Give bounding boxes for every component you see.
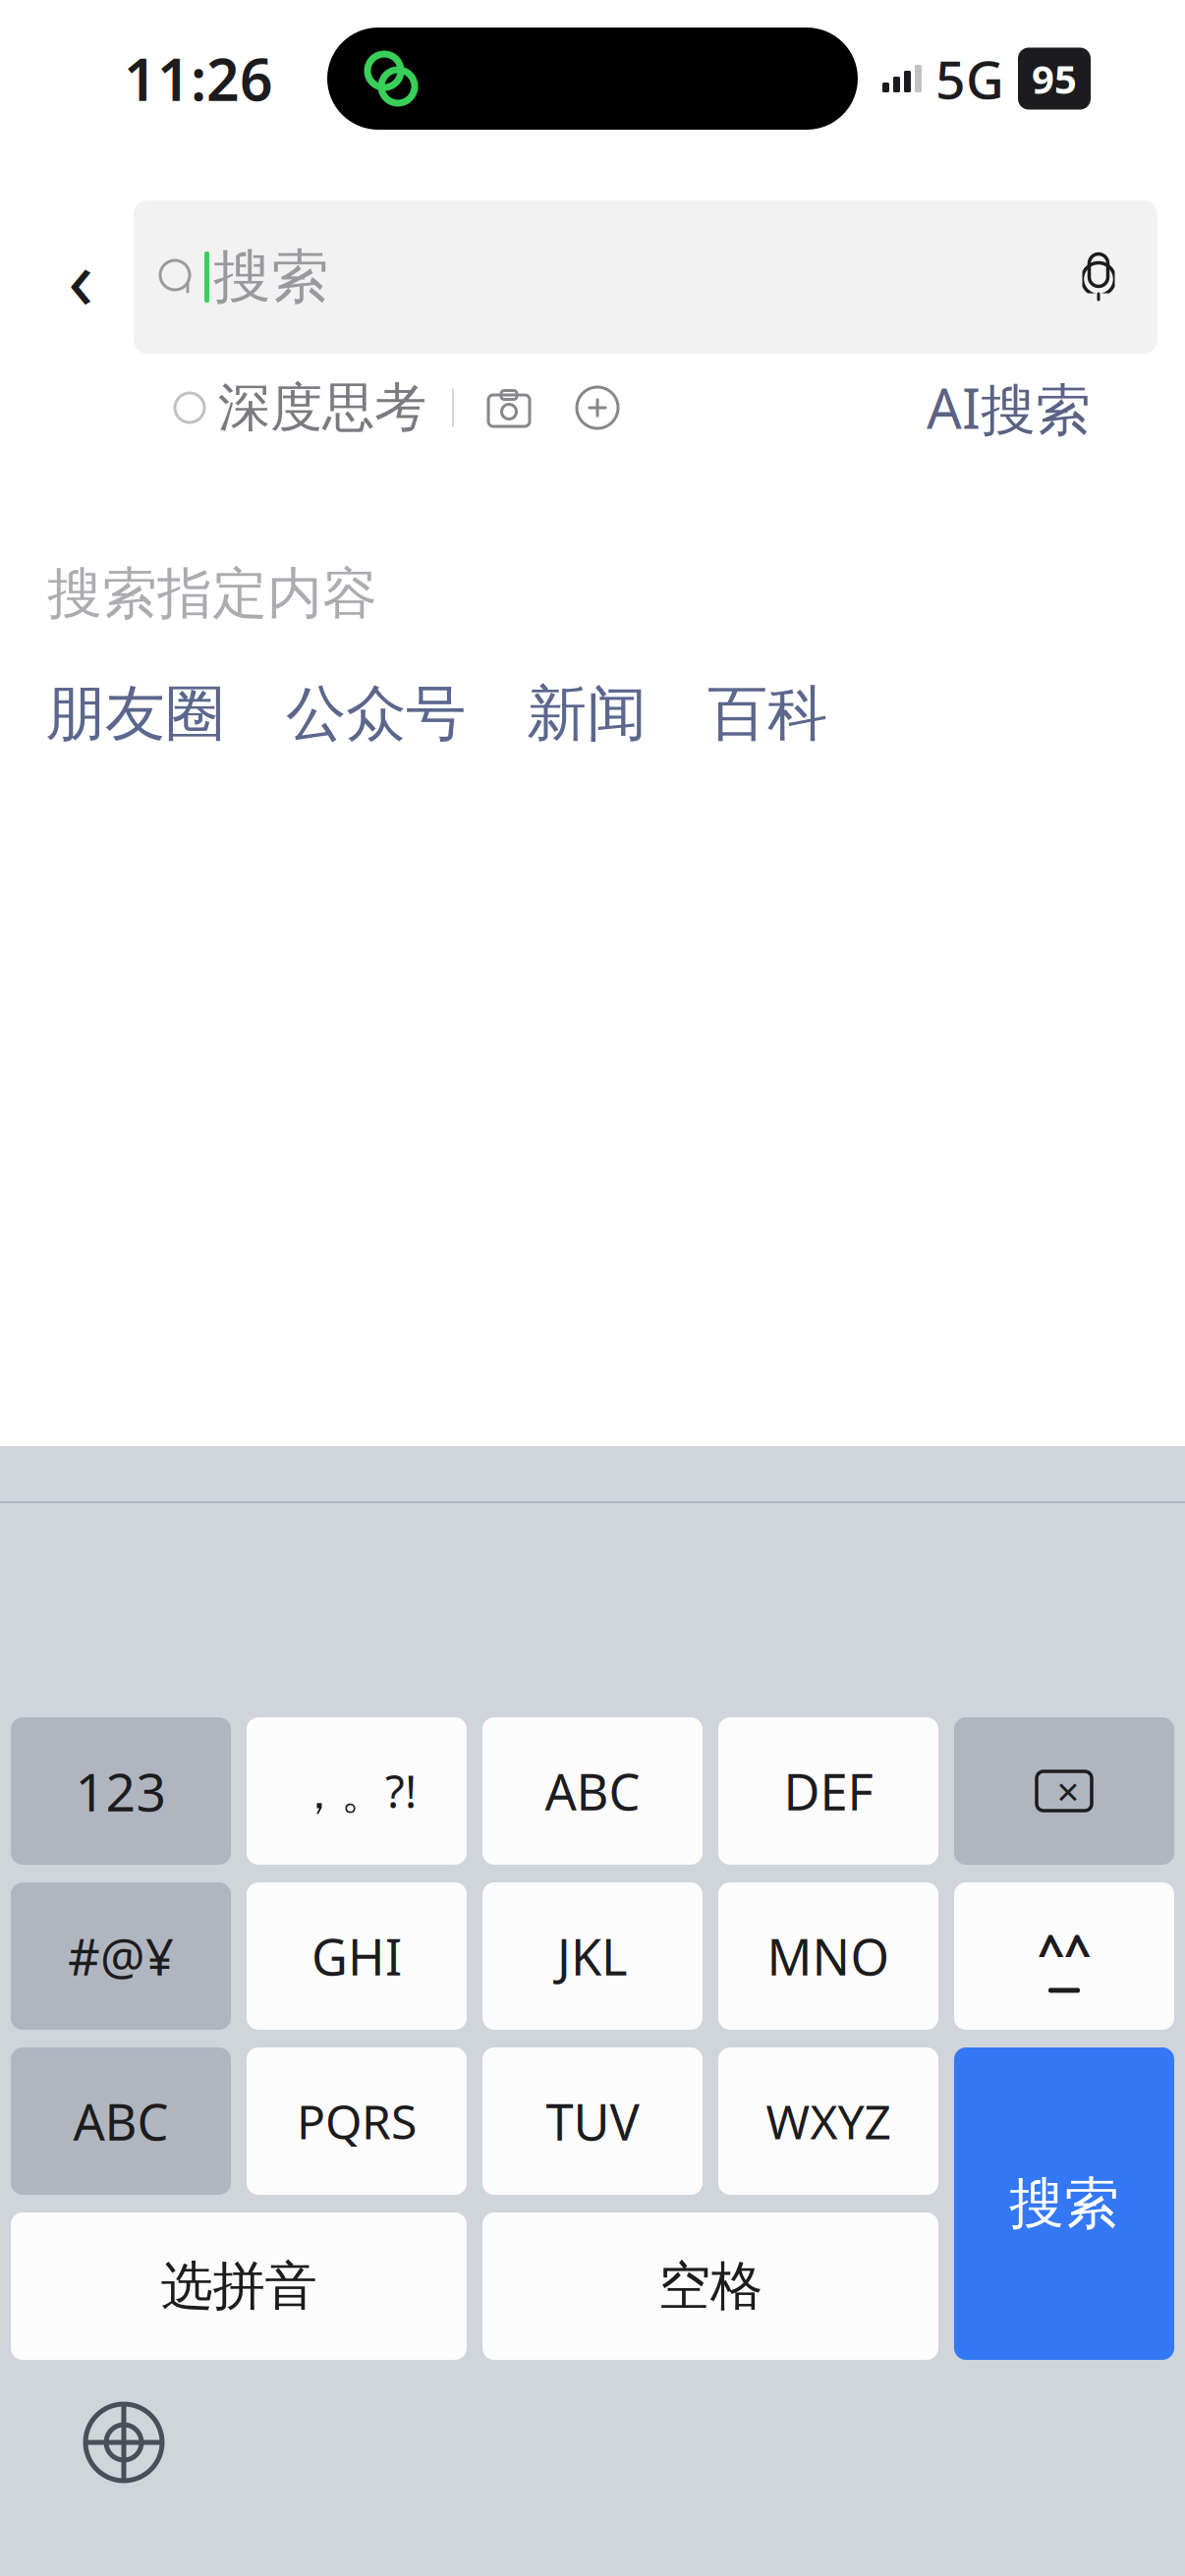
button[interactable]: 选拼音 (11, 2212, 467, 2360)
button[interactable]: 搜索 (954, 2047, 1174, 2360)
staticText: 搜索 (1009, 2170, 1119, 2237)
button[interactable]: MNO (718, 1882, 938, 2030)
staticText: ABC (545, 1758, 640, 1824)
button[interactable]: 拍照搜索 (472, 370, 546, 445)
button[interactable]: ，。?! (247, 1717, 467, 1865)
staticText: 95 (1032, 52, 1077, 105)
button[interactable]: ABC (11, 2047, 231, 2195)
staticText: 空格 (658, 2254, 762, 2318)
button[interactable]: × (954, 1717, 1174, 1865)
staticText: 百科 (707, 677, 827, 751)
staticText: MNO (767, 1923, 890, 1989)
staticText: × (1057, 1765, 1079, 1817)
staticText: WXYZ (766, 2090, 891, 2152)
staticText: ^^ (1038, 1919, 1091, 1982)
staticText: ‹ (68, 221, 93, 333)
button[interactable]: 语音输入 (1059, 238, 1138, 316)
staticText: JKL (557, 1923, 628, 1989)
button[interactable]: ^^ (954, 1882, 1174, 2030)
staticText: 新闻 (527, 677, 647, 751)
staticText: 朋友圈 (45, 677, 225, 751)
button[interactable]: 搜索 (134, 200, 1157, 354)
staticText: PQRS (297, 2090, 417, 2152)
button[interactable]: 返回 (28, 224, 134, 330)
button[interactable]: 深度思考 (175, 366, 426, 450)
staticText: TUV (546, 2088, 639, 2154)
staticText: ABC (73, 2088, 169, 2154)
button[interactable]: ABC (482, 1717, 703, 1865)
staticText: AI搜索 (927, 371, 1091, 444)
staticText: GHI (311, 1923, 402, 1989)
staticText: 公众号 (286, 677, 466, 751)
staticText: 123 (75, 1756, 167, 1826)
button[interactable]: 朋友圈 (45, 671, 225, 757)
button[interactable]: 新闻 (527, 671, 647, 757)
button[interactable]: 123 (11, 1717, 231, 1865)
button[interactable]: 切换输入法 (65, 2383, 183, 2501)
staticText: ，。?! (297, 1761, 417, 1821)
staticText: DEF (784, 1758, 873, 1824)
button[interactable]: #@¥ (11, 1882, 231, 2030)
staticText: 11:26 (124, 40, 273, 117)
staticText: #@¥ (68, 1923, 174, 1989)
staticText: 搜索 (213, 242, 329, 313)
staticText: 搜索指定内容 (47, 560, 377, 628)
button[interactable]: JKL (482, 1882, 703, 2030)
staticText: 深度思考 (218, 375, 426, 440)
button[interactable]: AI搜索 (927, 361, 1091, 454)
button[interactable]: DEF (718, 1717, 938, 1865)
button[interactable]: PQRS (247, 2047, 467, 2195)
button[interactable]: WXYZ (718, 2047, 938, 2195)
staticText: 选拼音 (161, 2254, 317, 2318)
button[interactable]: GHI (247, 1882, 467, 2030)
button[interactable]: 空格 (482, 2212, 938, 2360)
button[interactable]: TUV (482, 2047, 703, 2195)
staticText: 5G (935, 44, 1004, 113)
button[interactable]: 百科 (707, 671, 827, 757)
button[interactable]: 公众号 (286, 671, 466, 757)
button[interactable]: 更多 (560, 370, 635, 445)
